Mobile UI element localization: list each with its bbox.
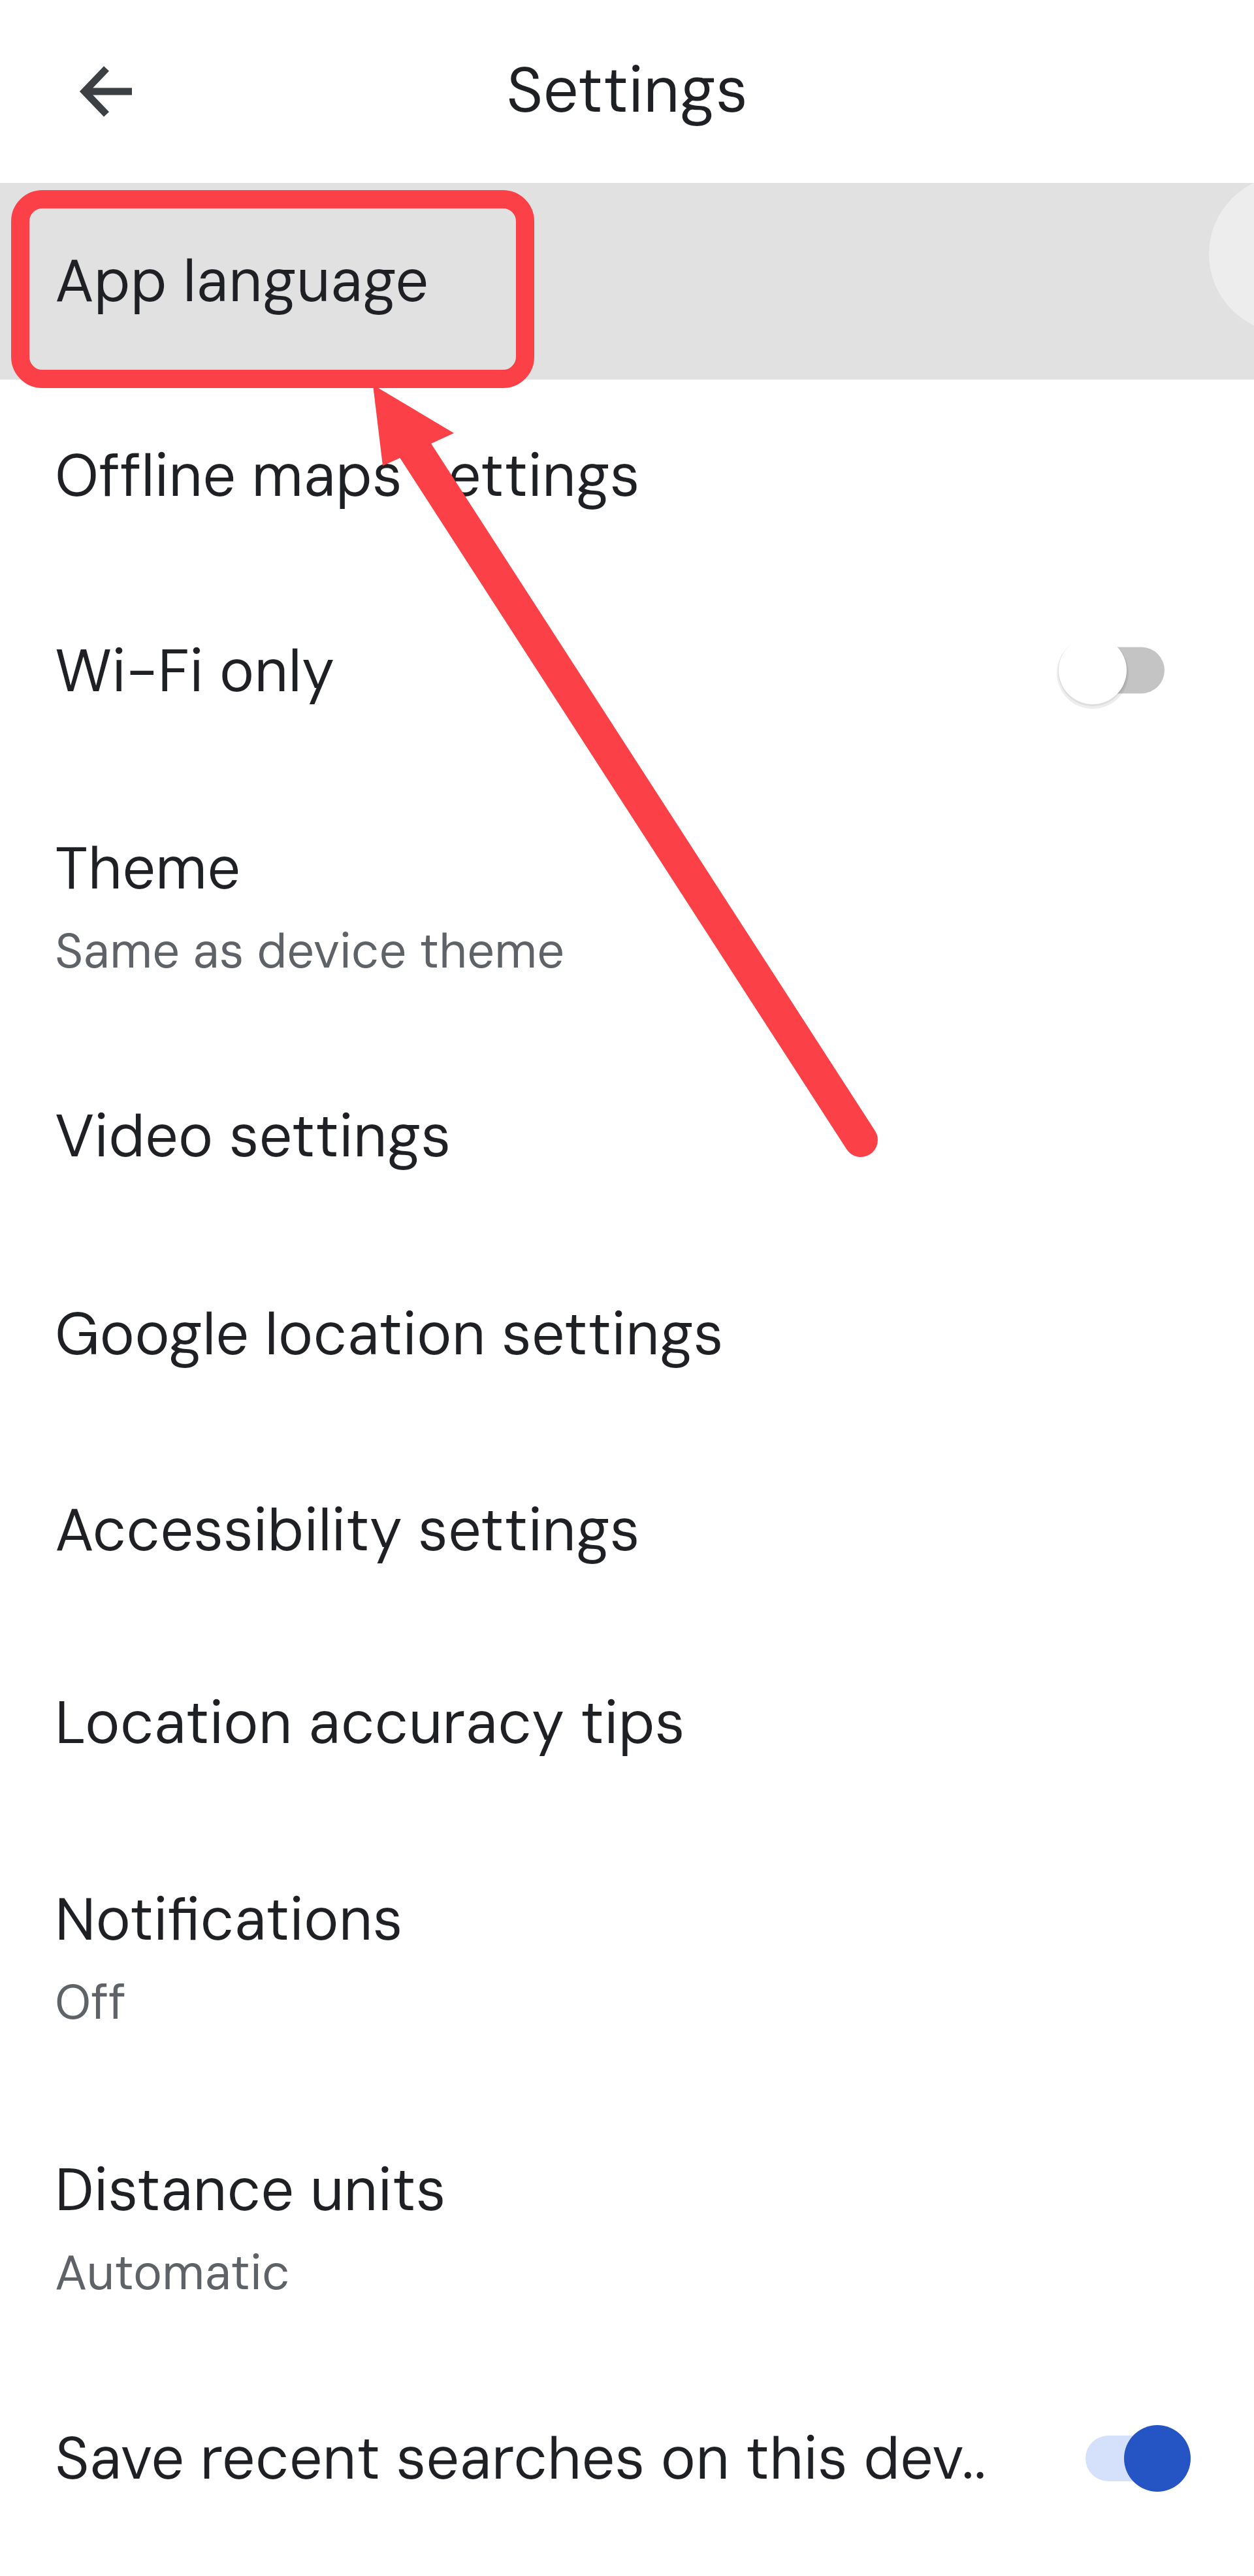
button[interactable]: Back bbox=[14, 26, 197, 209]
staticText: Distance units bbox=[55, 2152, 446, 2228]
button[interactable]: Google location settings bbox=[0, 1236, 1254, 1433]
staticText: Automatic bbox=[55, 2242, 290, 2304]
button[interactable]: App language bbox=[0, 183, 1254, 380]
staticText: Same as device theme bbox=[55, 920, 565, 983]
button[interactable]: Save recent searches on this dev.. bbox=[0, 2360, 1254, 2557]
staticText: Offline maps settings bbox=[55, 438, 640, 514]
staticText: Location accuracy tips bbox=[55, 1685, 685, 1761]
button[interactable]: Offline maps settings bbox=[0, 380, 1254, 572]
staticText: Wi-Fi only bbox=[55, 633, 335, 709]
staticText: Theme bbox=[55, 830, 241, 907]
button[interactable]: Save recent searches on this device, on bbox=[1114, 2415, 1201, 2502]
staticText: Settings bbox=[506, 50, 748, 131]
staticText: Off bbox=[55, 1971, 126, 2034]
staticText: Notifications bbox=[55, 1882, 403, 1958]
staticText: Save recent searches on this dev.. bbox=[55, 2421, 986, 2497]
button[interactable]: Theme bbox=[0, 772, 1254, 1041]
button[interactable]: Video settings bbox=[0, 1038, 1254, 1235]
button[interactable]: Wi-Fi only, off bbox=[1048, 626, 1175, 715]
button[interactable]: Notifications bbox=[0, 1823, 1254, 2092]
button[interactable]: Distance units bbox=[0, 2093, 1254, 2362]
button[interactable]: Location accuracy tips bbox=[0, 1625, 1254, 1821]
staticText: App language bbox=[55, 243, 429, 319]
button[interactable]: Wi-Fi only bbox=[0, 573, 1254, 770]
staticText: Accessibility settings bbox=[55, 1492, 640, 1569]
staticText: Google location settings bbox=[55, 1296, 724, 1373]
staticText: Video settings bbox=[55, 1098, 451, 1175]
button[interactable]: Accessibility settings bbox=[0, 1432, 1254, 1629]
